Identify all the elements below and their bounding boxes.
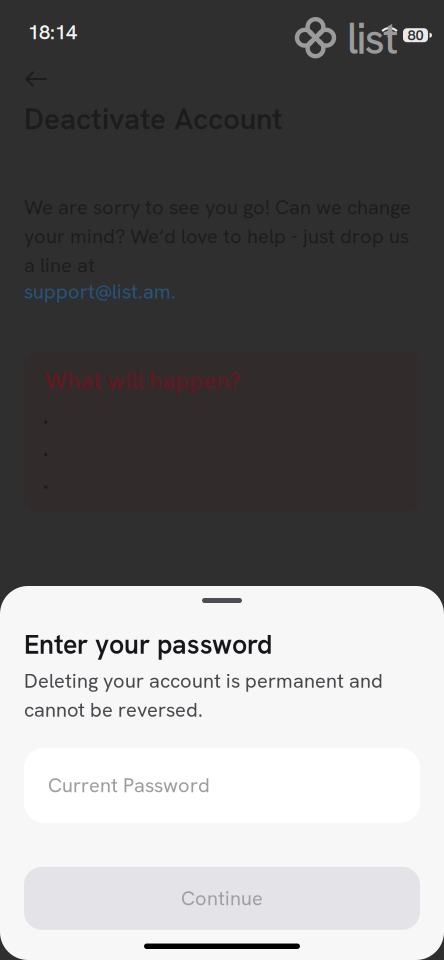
staticText: Continue xyxy=(181,885,263,911)
staticText: Enter your password xyxy=(24,627,272,662)
staticText: We are sorry to see you go! Can we chang… xyxy=(24,194,411,278)
button[interactable]: Continue xyxy=(24,867,420,930)
staticText: What will happen? xyxy=(44,365,240,396)
staticText: Deleting your account is permanent and c… xyxy=(24,668,383,723)
staticText: 80 xyxy=(407,26,423,45)
staticText: Current Password xyxy=(48,772,210,798)
button[interactable]: Current Password xyxy=(24,748,420,823)
staticText: support@list.am. xyxy=(24,278,176,304)
button[interactable]: support@list.am. xyxy=(24,278,176,304)
staticText: Deactivate Account xyxy=(24,100,283,138)
staticText: list xyxy=(347,11,398,67)
staticText: 18:14 xyxy=(28,19,77,45)
